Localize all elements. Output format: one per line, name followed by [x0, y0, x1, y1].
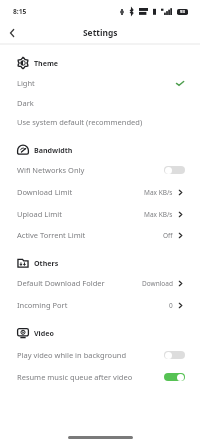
staticText: Resume music queue after video	[17, 372, 133, 382]
button[interactable]: Light	[0, 73, 200, 93]
staticText: Active Torrent Limit	[17, 230, 86, 240]
staticText: Theme	[34, 58, 59, 68]
staticText: Off	[163, 231, 173, 240]
staticText: Light	[17, 78, 35, 88]
staticText: Settings	[83, 27, 118, 38]
button[interactable]: Upload Limit	[0, 204, 200, 224]
button[interactable]: Default Download Folder	[0, 273, 200, 293]
staticText: Download	[142, 279, 173, 288]
staticText: Use system default (recommended)	[17, 117, 143, 127]
staticText: Play video while in background	[17, 350, 127, 360]
staticText: Others	[34, 258, 59, 268]
staticText: Wifi Networks Only	[17, 165, 85, 175]
staticText: 93	[180, 9, 185, 15]
button[interactable]: Play video while in background	[0, 345, 200, 365]
button[interactable]: Use system default (recommended)	[0, 112, 200, 132]
button[interactable]: Incoming Port	[0, 295, 200, 315]
staticText: Max KB/s	[144, 210, 173, 219]
staticText: Default Download Folder	[17, 278, 105, 288]
staticText: Video	[34, 328, 54, 338]
staticText: 0	[169, 301, 173, 310]
staticText: Max KB/s	[144, 188, 173, 197]
button[interactable]: Active Torrent Limit	[0, 225, 200, 245]
button[interactable]: Resume music queue after video	[0, 367, 200, 387]
button[interactable]: Dark	[0, 93, 200, 113]
staticText: Bandwidth	[34, 145, 73, 155]
staticText: 8:15	[13, 7, 27, 16]
staticText: Dark	[17, 98, 34, 108]
staticText: Download Limit	[17, 187, 73, 197]
staticText: Incoming Port	[17, 300, 68, 310]
staticText: Upload Limit	[17, 209, 62, 219]
button[interactable]: Wifi Networks Only	[0, 160, 200, 180]
button[interactable]: Download Limit	[0, 182, 200, 202]
button[interactable]: Back	[2, 23, 22, 43]
